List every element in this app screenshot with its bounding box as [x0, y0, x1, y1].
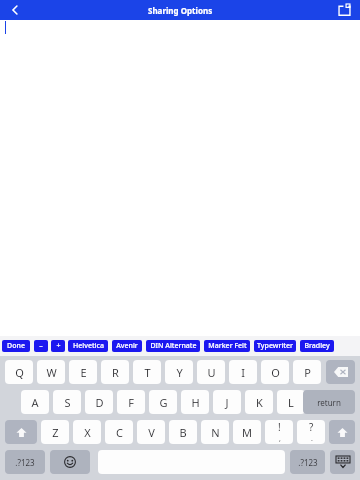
button[interactable]: T — [133, 360, 161, 384]
button[interactable]: Backspace — [326, 360, 355, 384]
staticText: . — [311, 434, 313, 444]
staticText: J — [225, 395, 229, 410]
staticText: O — [271, 365, 280, 380]
staticText: S — [64, 395, 71, 410]
button[interactable]: X — [73, 420, 101, 444]
staticText: .?123 — [15, 457, 35, 468]
staticText: Bradley — [304, 341, 330, 351]
button[interactable]: H — [181, 390, 209, 414]
button[interactable]: S — [53, 390, 81, 414]
button[interactable]: F — [117, 390, 145, 414]
button[interactable]: Y — [165, 360, 193, 384]
button[interactable]: Marker Felt — [204, 340, 250, 352]
button[interactable]: Helvetica — [68, 340, 108, 352]
staticText: return — [317, 397, 341, 408]
staticText: – — [39, 341, 43, 351]
staticText: X — [84, 425, 91, 440]
staticText: Q — [15, 365, 24, 380]
staticText: C — [116, 425, 123, 440]
button[interactable]: Bradley — [300, 340, 334, 352]
button[interactable]: I — [229, 360, 257, 384]
button[interactable]: return — [303, 390, 355, 414]
staticText: Sharing Options — [148, 5, 213, 16]
staticText: U — [207, 365, 216, 380]
button[interactable]: ! — [265, 420, 293, 444]
button[interactable]: G — [149, 390, 177, 414]
button[interactable]: Shift — [329, 420, 355, 444]
staticText: K — [256, 395, 263, 410]
button[interactable]: P — [293, 360, 321, 384]
button[interactable]: Avenir — [112, 340, 142, 352]
staticText: W — [46, 365, 57, 380]
button[interactable]: A — [21, 390, 49, 414]
button[interactable]: + — [51, 340, 65, 352]
button[interactable]: U — [197, 360, 225, 384]
staticText: B — [179, 425, 187, 440]
button[interactable]: C — [105, 420, 133, 444]
button[interactable]: E — [69, 360, 97, 384]
staticText: G — [159, 395, 168, 410]
staticText: Done — [7, 341, 25, 351]
button[interactable]: R — [101, 360, 129, 384]
button[interactable]: K — [245, 390, 273, 414]
staticText: E — [80, 365, 87, 380]
staticText: M — [242, 425, 252, 440]
button[interactable]: Z — [41, 420, 69, 444]
staticText: Marker Felt — [208, 341, 247, 351]
staticText: ! — [278, 420, 281, 434]
staticText: DIN Alternate — [150, 341, 197, 351]
staticText: Typewriter — [257, 341, 293, 351]
button[interactable]: Done — [2, 340, 30, 352]
button[interactable]: W — [37, 360, 65, 384]
staticText: I — [241, 365, 245, 380]
staticText: N — [211, 425, 220, 440]
staticText: H — [191, 395, 200, 410]
staticText: ? — [309, 420, 314, 434]
button[interactable]: M — [233, 420, 261, 444]
button[interactable]: N — [201, 420, 229, 444]
button[interactable]: O — [261, 360, 289, 384]
staticText: F — [128, 395, 134, 410]
staticText: , — [279, 434, 281, 444]
button[interactable]: Back — [2, 0, 28, 20]
button[interactable]: – — [34, 340, 48, 352]
button[interactable]: Q — [5, 360, 33, 384]
button[interactable]: Emoji — [50, 450, 90, 474]
button[interactable]: V — [137, 420, 165, 444]
button[interactable]: Typewriter — [254, 340, 296, 352]
button[interactable]: J — [213, 390, 241, 414]
button[interactable]: B — [169, 420, 197, 444]
staticText: Helvetica — [73, 341, 104, 351]
staticText: T — [144, 365, 151, 380]
staticText: Z — [52, 425, 59, 440]
button[interactable]: Hide keyboard — [330, 450, 355, 474]
staticText: V — [148, 425, 155, 440]
button[interactable]: .?123 — [5, 450, 45, 474]
button[interactable]: ? — [297, 420, 325, 444]
staticText: A — [31, 395, 39, 410]
staticText: + — [56, 341, 61, 351]
staticText: R — [112, 365, 119, 380]
button[interactable]: Shift — [5, 420, 37, 444]
staticText: Avenir — [116, 341, 138, 351]
staticText: L — [288, 395, 294, 410]
staticText: .?123 — [298, 457, 318, 468]
button[interactable]: New — [332, 0, 356, 20]
staticText: D — [95, 395, 104, 410]
staticText: P — [304, 365, 311, 380]
staticText: Y — [176, 365, 183, 380]
button[interactable]: DIN Alternate — [146, 340, 200, 352]
button[interactable]: D — [85, 390, 113, 414]
button[interactable]: L — [277, 390, 305, 414]
button[interactable]: .?123 — [290, 450, 325, 474]
